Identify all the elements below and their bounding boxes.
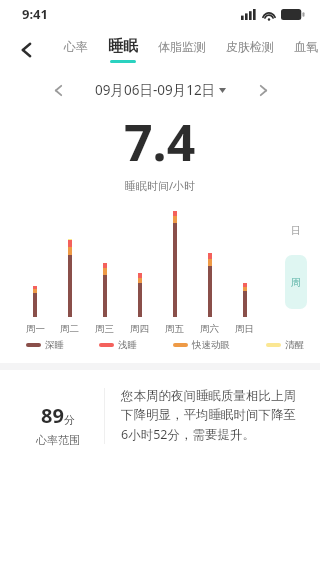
staticText: 周二 <box>60 323 79 335</box>
staticText: 日 <box>291 224 301 237</box>
staticText: 周日 <box>235 323 254 335</box>
button[interactable]: 周 <box>285 255 307 309</box>
button[interactable]: 周一 <box>18 286 52 335</box>
staticText: 09月06日-09月12日 <box>95 81 216 99</box>
staticText: 周四 <box>130 323 149 335</box>
staticText: 体脂监测 <box>158 39 206 54</box>
staticText: 分 <box>64 413 75 427</box>
button[interactable]: 体脂监测 <box>156 39 208 61</box>
button[interactable]: 周日 <box>227 283 262 335</box>
staticText: 周六 <box>200 323 219 335</box>
button[interactable]: 周五 <box>157 211 192 335</box>
staticText: 睡眠时间/小时 <box>125 178 196 193</box>
button[interactable]: 浅睡 <box>99 339 137 351</box>
staticText: 心率 <box>64 39 88 54</box>
button[interactable]: 深睡 <box>26 339 64 351</box>
button[interactable]: 睡眠 <box>106 37 140 63</box>
staticText: 浅睡 <box>118 339 137 351</box>
staticText: 快速动眼 <box>192 339 230 351</box>
button[interactable]: 快速动眼 <box>173 339 230 351</box>
button[interactable]: 周四 <box>122 273 157 335</box>
staticText: 7.4 <box>124 108 196 176</box>
button[interactable]: 血氧 <box>292 39 320 61</box>
button[interactable]: Next week <box>248 75 278 105</box>
staticText: 89 <box>41 402 64 429</box>
button[interactable]: 皮肤检测 <box>224 39 276 61</box>
staticText: 周 <box>291 276 301 289</box>
staticText: 深睡 <box>45 339 64 351</box>
button[interactable]: 心率 <box>62 39 90 61</box>
button[interactable]: 周六 <box>192 253 227 335</box>
staticText: 周五 <box>165 323 184 335</box>
staticText: 睡眠 <box>108 37 138 56</box>
staticText: 心率范围 <box>36 433 80 447</box>
staticText: 血氧 <box>294 39 318 54</box>
staticText: 周一 <box>26 323 45 335</box>
button[interactable]: 日 <box>285 217 307 243</box>
staticText: 周三 <box>95 323 114 335</box>
button[interactable]: 09月06日-09月12日 <box>91 77 230 103</box>
staticText: 9:41 <box>22 5 48 23</box>
staticText: 清醒 <box>285 339 304 351</box>
button[interactable]: 周二 <box>52 239 87 335</box>
button[interactable]: 清醒 <box>266 339 304 351</box>
staticText: 皮肤检测 <box>226 39 274 54</box>
staticText: 您本周的夜间睡眠质量相比上周下降明显，平均睡眠时间下降至6小时52分，需要提升。 <box>121 388 302 442</box>
button[interactable]: Back <box>8 32 44 68</box>
button[interactable]: Previous week <box>43 75 73 105</box>
button[interactable]: 周三 <box>87 263 122 335</box>
